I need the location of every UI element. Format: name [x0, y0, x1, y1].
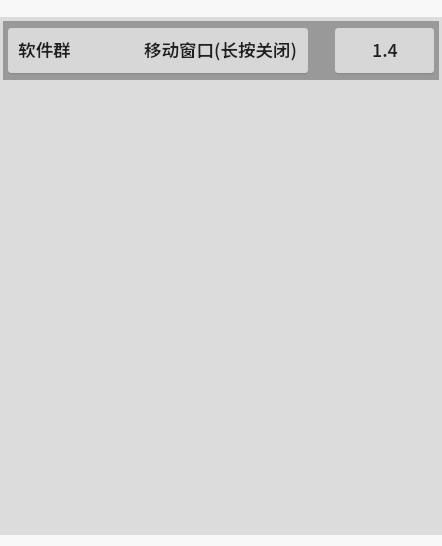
staticText: 1.4 — [372, 37, 398, 62]
staticText: 软件群 — [18, 37, 71, 62]
button[interactable]: 软件群 — [8, 28, 308, 73]
staticText: 移动窗口(长按关闭) — [144, 37, 297, 62]
button[interactable]: 1.4 — [335, 28, 434, 73]
